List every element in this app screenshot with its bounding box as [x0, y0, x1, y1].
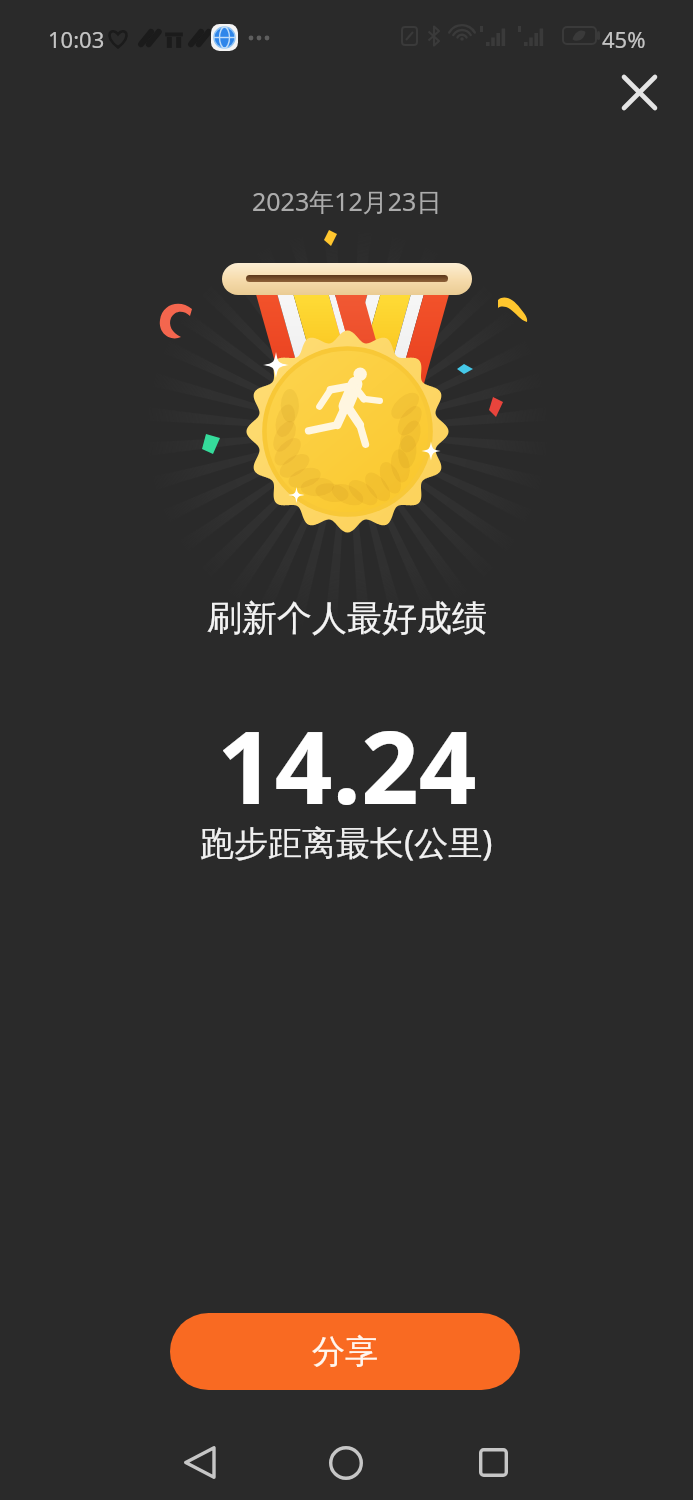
staticText: 跑步距离最长(公里): [200, 819, 493, 865]
staticText: 刷新个人最好成绩: [207, 596, 487, 640]
button[interactable]: 分享: [170, 1313, 520, 1390]
button[interactable]: Recents: [449, 1425, 537, 1500]
button[interactable]: Home: [302, 1425, 390, 1500]
staticText: 14.24: [217, 696, 477, 834]
staticText: 2023年12月23日: [252, 184, 442, 218]
button[interactable]: Back: [155, 1425, 243, 1500]
staticText: 分享: [312, 1331, 378, 1373]
staticText: 45%: [602, 24, 646, 54]
staticText: 10:03: [48, 24, 105, 54]
button[interactable]: Close: [609, 62, 669, 122]
